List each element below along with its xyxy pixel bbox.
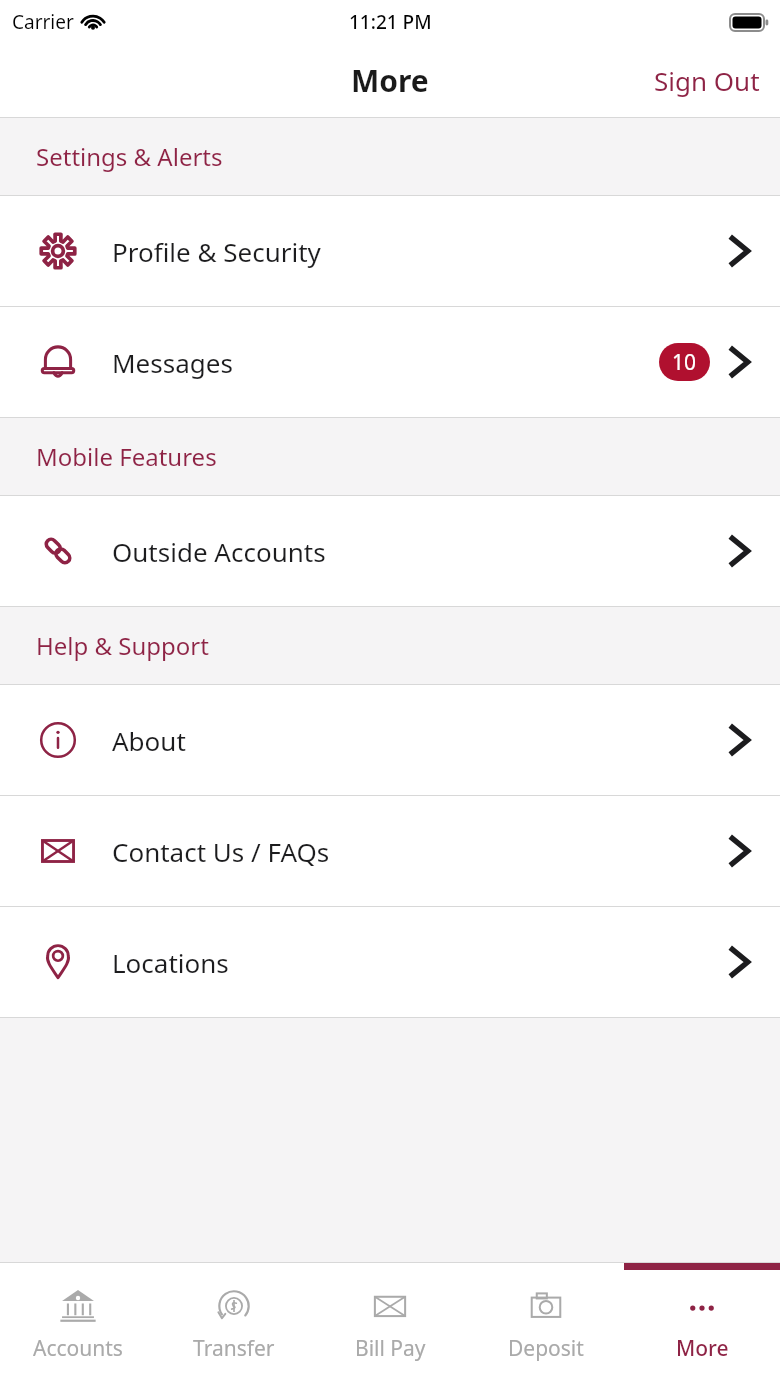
button[interactable]: Bill Pay	[312, 1263, 468, 1387]
button[interactable]: Deposit	[468, 1263, 624, 1387]
staticText: 10	[672, 348, 697, 377]
button[interactable]: Messages	[0, 307, 780, 417]
button[interactable]: Profile and Security	[0, 196, 780, 306]
button[interactable]: About	[0, 685, 780, 795]
other: Profile and Security	[37, 230, 79, 272]
staticText: Transfer	[193, 1334, 275, 1363]
staticText: More	[351, 60, 429, 101]
staticText: 11:21 PM	[349, 9, 432, 35]
staticText: Help & Support	[36, 629, 209, 662]
button[interactable]: Accounts	[0, 1263, 156, 1387]
staticText: Settings & Alerts	[36, 140, 223, 173]
staticText: Contact Us / FAQs	[112, 834, 330, 869]
staticText: More	[676, 1334, 729, 1363]
button[interactable]: Contact Us and FAQs	[0, 796, 780, 906]
other: Messages	[37, 341, 79, 383]
staticText: Mobile Features	[36, 440, 217, 473]
button[interactable]: Transfer	[156, 1263, 312, 1387]
other: About	[37, 719, 79, 761]
staticText: Deposit	[508, 1334, 584, 1363]
staticText: Messages	[112, 345, 233, 380]
button[interactable]: More	[624, 1263, 780, 1387]
staticText: About	[112, 723, 186, 758]
staticText: Outside Accounts	[112, 534, 326, 569]
button[interactable]: Locations	[0, 907, 780, 1017]
other: Contact Us and FAQs	[37, 830, 79, 872]
staticText: Bill Pay	[355, 1334, 426, 1363]
staticText: Profile & Security	[112, 234, 321, 269]
other: Locations	[37, 941, 79, 983]
button[interactable]: Sign Out	[634, 51, 780, 110]
button[interactable]: Outside Accounts	[0, 496, 780, 606]
staticText: Carrier	[12, 9, 74, 35]
staticText: Locations	[112, 945, 229, 980]
staticText: Accounts	[33, 1334, 123, 1363]
staticText: Sign Out	[654, 63, 760, 98]
other: Outside Accounts	[37, 530, 79, 572]
